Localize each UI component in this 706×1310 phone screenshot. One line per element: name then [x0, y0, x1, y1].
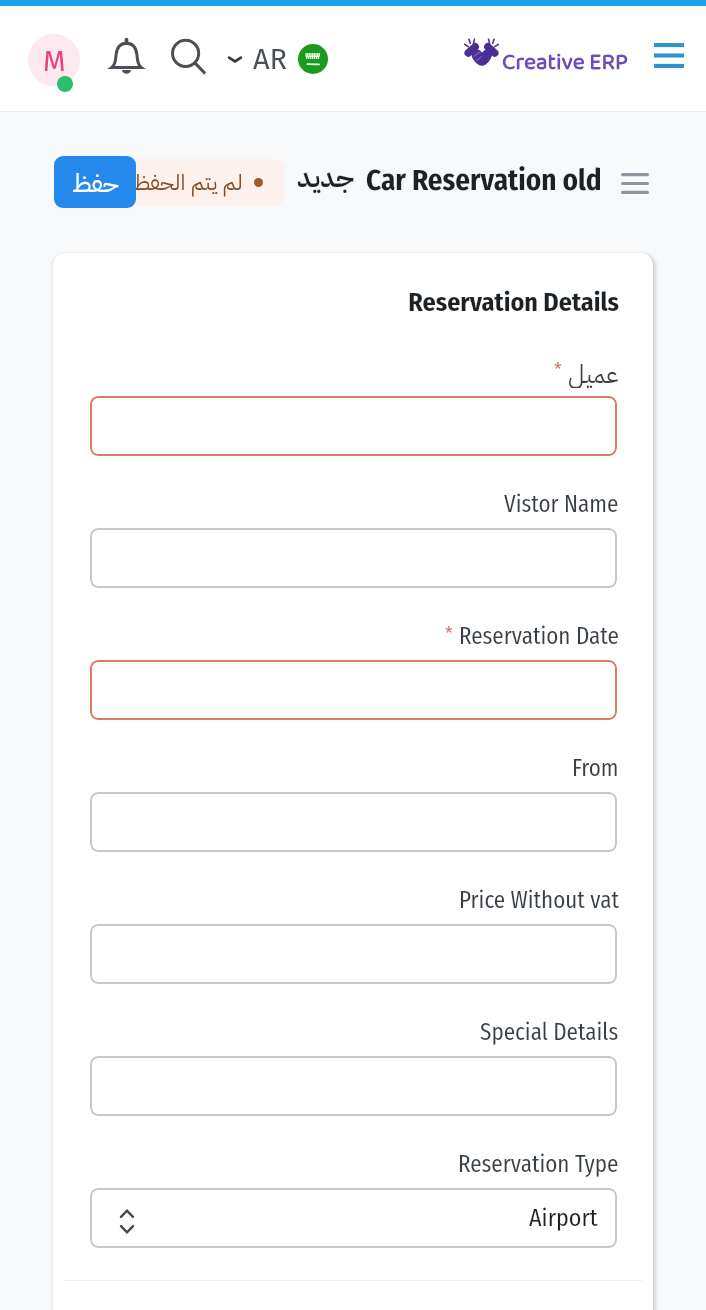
staticText: حفظ	[72, 165, 119, 203]
staticText: Creative ERP	[502, 44, 629, 81]
button[interactable]	[90, 660, 617, 720]
button[interactable]: Airport	[90, 1188, 617, 1248]
button[interactable]: Search	[164, 32, 214, 81]
button[interactable]	[90, 924, 617, 984]
staticText: *	[445, 622, 453, 645]
staticText: From	[572, 754, 619, 782]
button[interactable]	[90, 528, 617, 588]
staticText: Price Without vat	[459, 886, 619, 914]
staticText: عميل	[568, 356, 619, 388]
button[interactable]	[90, 396, 617, 456]
button[interactable]: Notifications	[102, 30, 151, 84]
staticText: Vistor Name	[504, 490, 619, 518]
button[interactable]: لم يتم الحفظ	[100, 159, 284, 206]
staticText: Car Reservation old	[366, 163, 602, 198]
staticText: جديد	[297, 158, 354, 199]
button[interactable]: AR	[226, 38, 328, 80]
staticText: *	[554, 358, 562, 381]
button[interactable]	[90, 1056, 617, 1116]
staticText: M	[43, 44, 66, 79]
button[interactable]: Main menu	[644, 34, 694, 76]
button[interactable]: Creative ERP	[462, 34, 627, 82]
staticText: Reservation Details	[408, 287, 619, 318]
staticText: Reservation Type	[458, 1150, 619, 1178]
button[interactable]: Profile	[28, 34, 80, 86]
button[interactable]	[90, 792, 617, 852]
button[interactable]: More options	[611, 163, 659, 203]
staticText: لم يتم الحفظ	[133, 166, 243, 199]
button[interactable]: حفظ	[54, 156, 136, 208]
staticText: Special Details	[480, 1018, 619, 1046]
staticText: Airport	[529, 1204, 598, 1233]
staticText: AR	[253, 42, 288, 77]
staticText: Reservation Date	[459, 622, 619, 650]
